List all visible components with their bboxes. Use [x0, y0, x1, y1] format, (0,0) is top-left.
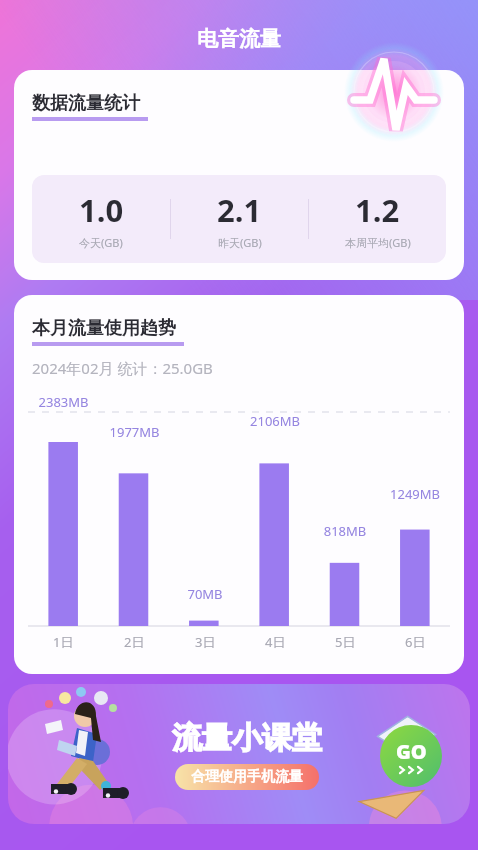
button[interactable]: 流量小课堂 — [8, 684, 470, 824]
button[interactable]: 1.2 — [309, 189, 446, 250]
staticText: 1977MB — [99, 423, 170, 441]
staticText: 数据流量统计 — [32, 92, 140, 115]
staticText: 1日 — [53, 633, 74, 651]
staticText: 今天(GB) — [79, 235, 123, 250]
staticText: 2383MB — [28, 393, 99, 411]
staticText: 6日 — [405, 633, 426, 651]
staticText: 2106MB — [240, 412, 310, 430]
button[interactable]: 1.0 — [32, 189, 170, 250]
staticText: GO — [396, 738, 427, 765]
staticText: 流量小课堂 — [172, 719, 322, 757]
staticText: 5日 — [335, 633, 356, 651]
staticText: 2日 — [124, 633, 145, 651]
staticText: 本周平均(GB) — [345, 235, 411, 250]
staticText: 1.2 — [355, 189, 400, 231]
staticText: 电音流量 — [0, 26, 478, 52]
button[interactable]: 2.1 — [171, 189, 308, 250]
staticText: 3日 — [195, 633, 216, 651]
staticText: 1.0 — [79, 189, 124, 231]
staticText: 合理使用手机流量 — [191, 768, 303, 786]
staticText: 本月流量使用趋势 — [32, 317, 176, 340]
staticText: 昨天(GB) — [218, 235, 262, 250]
staticText: 2.1 — [217, 189, 262, 231]
staticText: 70MB — [170, 585, 240, 603]
staticText: 4日 — [265, 633, 286, 651]
staticText: 2024年02月 统计：25.0GB — [32, 358, 213, 378]
button[interactable]: GO 前往流量小课堂 — [380, 725, 442, 787]
button[interactable]: 流量监测 — [344, 42, 444, 142]
staticText: 818MB — [310, 522, 380, 540]
staticText: 1249MB — [380, 485, 450, 503]
